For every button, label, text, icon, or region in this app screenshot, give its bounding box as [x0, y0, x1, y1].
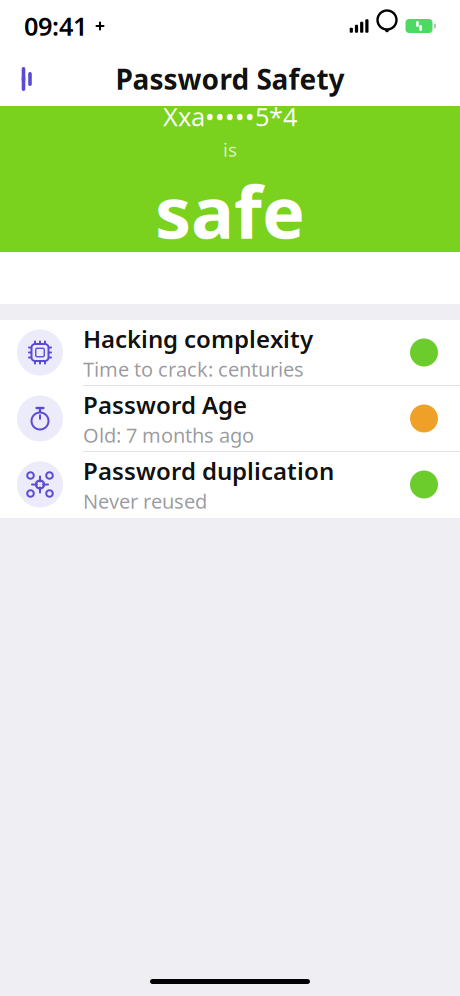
staticText: Time to crack: centuries [83, 356, 304, 382]
staticText: Password duplication [83, 455, 334, 487]
button[interactable]: Password duplication [0, 452, 460, 518]
staticText: is [223, 137, 237, 162]
staticText: Password Safety [115, 60, 344, 98]
staticText: 09:41 [24, 9, 87, 43]
staticText: safe [155, 163, 305, 258]
button[interactable]: Back [0, 55, 54, 103]
button[interactable]: Password Age [0, 386, 460, 452]
staticText: Xxa•••••5*4 [163, 99, 297, 133]
staticText: Never reused [83, 488, 207, 514]
staticText: Old: 7 months ago [83, 422, 254, 448]
staticText: Hacking complexity [83, 323, 313, 355]
button[interactable]: Hacking complexity [0, 320, 460, 386]
staticText: Password Age [83, 389, 247, 421]
